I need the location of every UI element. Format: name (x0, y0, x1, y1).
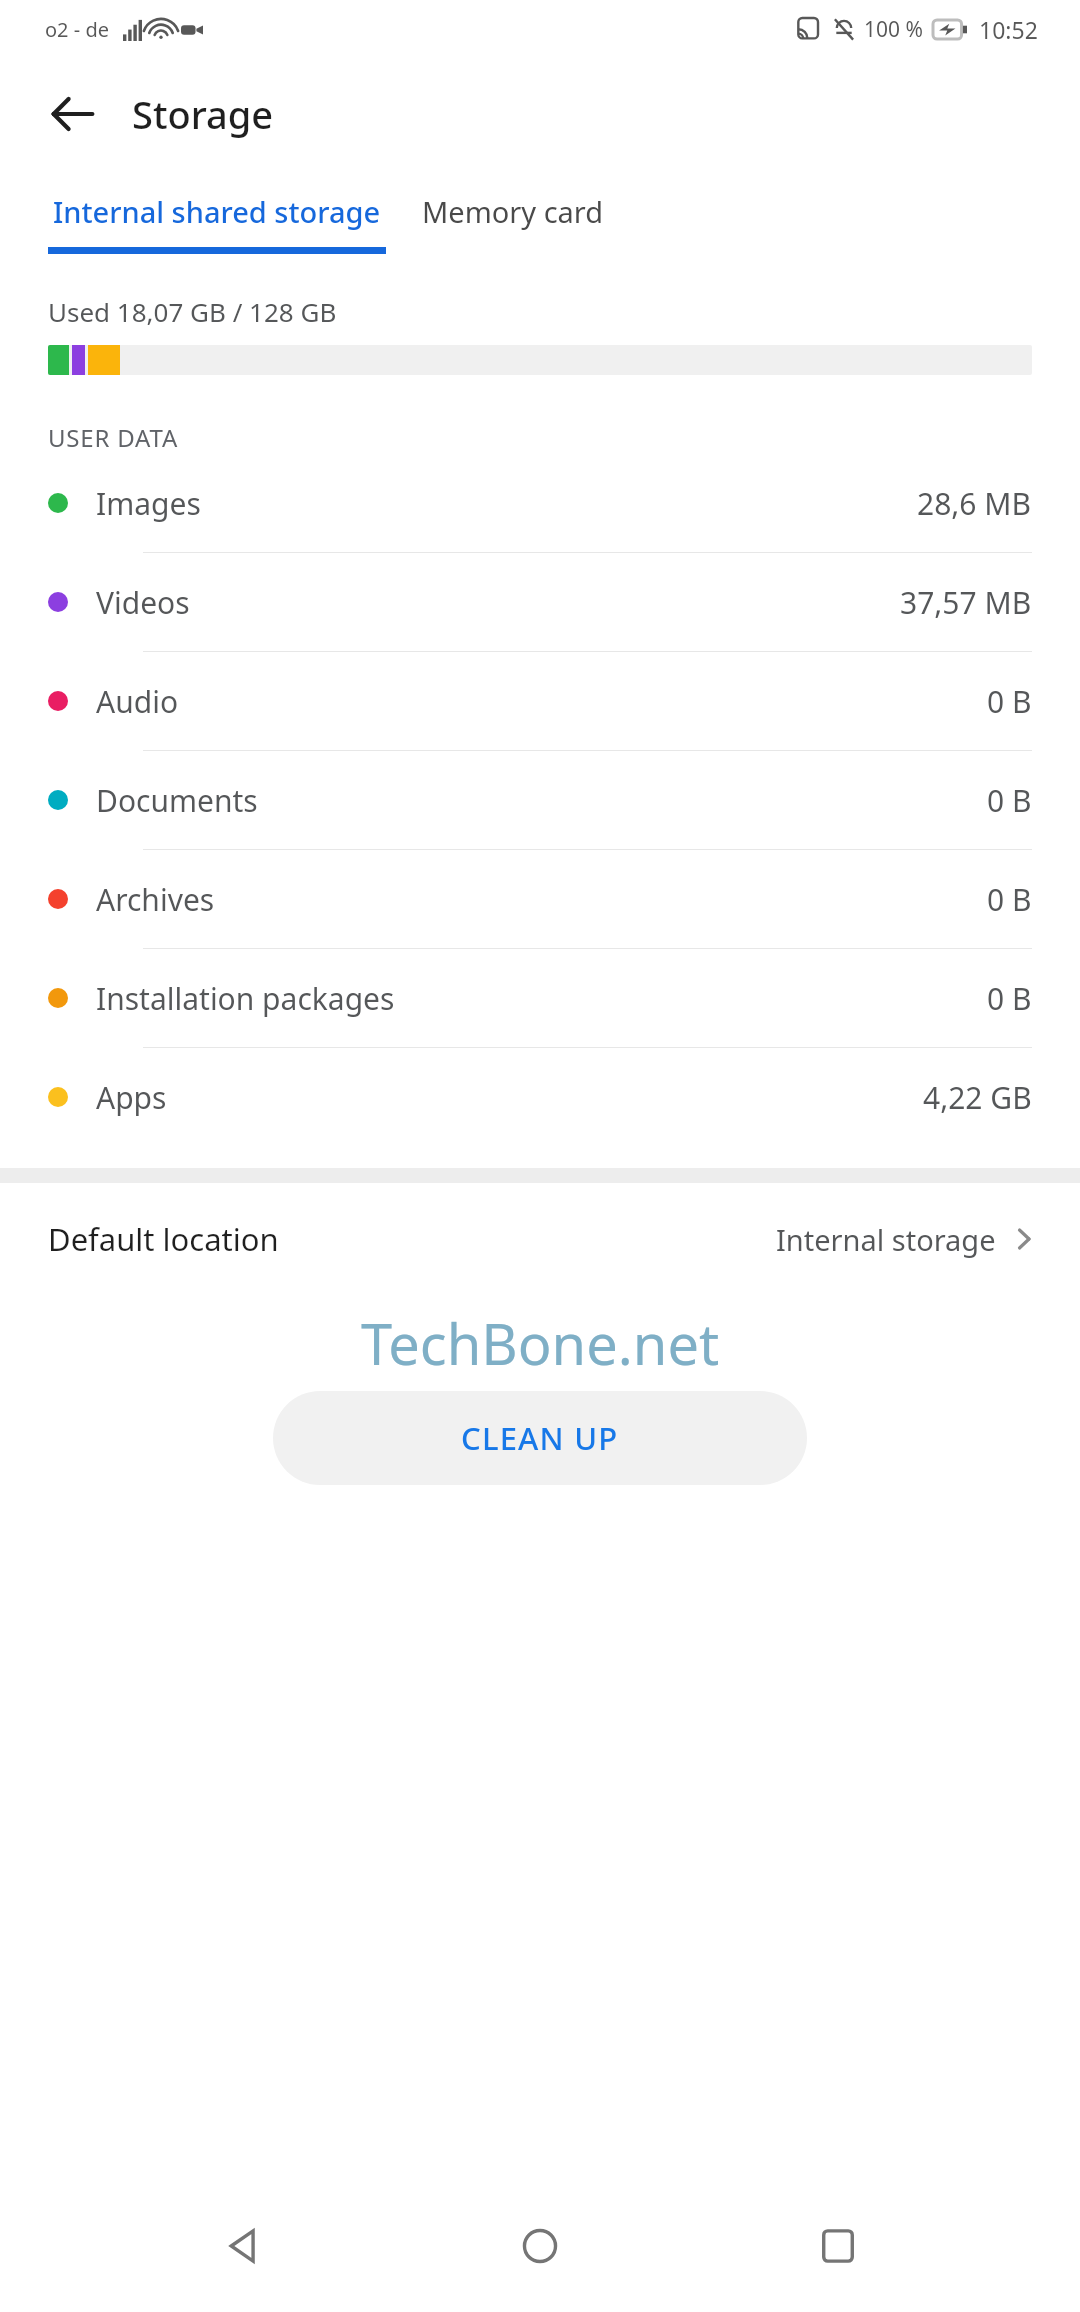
button[interactable]: Apps (0, 1048, 1080, 1146)
button[interactable]: Memory card (422, 170, 604, 231)
staticText: Memory card (422, 192, 604, 231)
button[interactable]: Images (0, 454, 1080, 552)
button[interactable]: Documents (0, 751, 1080, 849)
button[interactable]: Recent apps (783, 2191, 893, 2301)
button[interactable]: Default location (0, 1183, 1080, 1295)
staticText: Default location (48, 1218, 279, 1260)
staticText: Videos (96, 582, 190, 623)
staticText: 4,22 GB (923, 1077, 1032, 1118)
staticText: Internal storage (776, 1220, 996, 1259)
staticText: Used 18,07 GB / 128 GB (48, 294, 337, 329)
staticText: Documents (96, 780, 258, 821)
button[interactable]: Videos (0, 553, 1080, 651)
button[interactable]: Audio (0, 652, 1080, 750)
staticText: 0 B (987, 879, 1032, 920)
staticText: 0 B (987, 780, 1032, 821)
button[interactable]: Archives (0, 850, 1080, 948)
button[interactable]: Installation packages (0, 949, 1080, 1047)
staticText: 10:52 (979, 14, 1038, 45)
staticText: Storage (132, 88, 274, 140)
button[interactable]: Internal shared storage (48, 170, 386, 254)
staticText: o2 - de (45, 16, 109, 43)
staticText: CLEAN UP (461, 1417, 619, 1459)
button[interactable]: CLEAN UP (273, 1391, 807, 1485)
staticText: Archives (96, 879, 215, 920)
button[interactable]: Home (485, 2191, 595, 2301)
staticText: Internal shared storage (53, 192, 381, 231)
staticText: Apps (96, 1077, 167, 1118)
staticText: Installation packages (96, 978, 395, 1019)
staticText: 37,57 MB (900, 582, 1032, 623)
staticText: USER DATA (48, 421, 179, 454)
staticText: Audio (96, 681, 179, 722)
button[interactable]: Back (32, 73, 114, 155)
staticText: 28,6 MB (917, 483, 1032, 524)
staticText: 100 % (864, 15, 923, 44)
button[interactable]: Back (188, 2191, 298, 2301)
staticText: Images (96, 483, 201, 524)
staticText: 0 B (987, 978, 1032, 1019)
staticText: 0 B (987, 681, 1032, 722)
staticText: TechBone.net (361, 1305, 720, 1381)
